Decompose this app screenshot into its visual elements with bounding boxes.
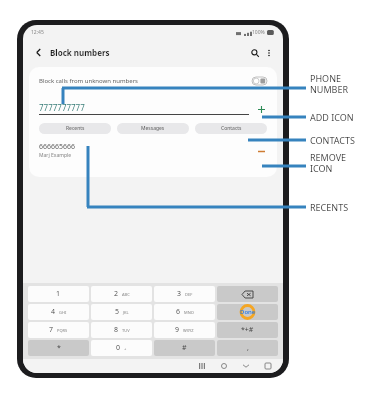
staticText: 7 <box>49 325 54 335</box>
staticText: GHI <box>59 310 67 315</box>
staticText: MNO <box>184 310 194 315</box>
staticText: # <box>182 343 187 353</box>
button[interactable]: Done <box>217 304 278 320</box>
button[interactable]: 0 <box>91 340 152 356</box>
button[interactable]: Remove number <box>255 145 267 157</box>
button[interactable]: 5 <box>91 304 152 320</box>
staticText: 4 <box>51 307 56 317</box>
staticText: 666665666 <box>39 142 76 152</box>
staticText: DEF <box>185 292 193 297</box>
staticText: Block calls from unknown numbers <box>39 77 138 85</box>
button[interactable]: 7 <box>28 322 89 338</box>
button[interactable]: Block calls from unknown numbers <box>29 74 277 88</box>
staticText: 0 <box>116 343 121 353</box>
staticText: + <box>124 346 127 351</box>
staticText: PQRS <box>57 328 68 333</box>
staticText: CONTACTS <box>310 134 355 146</box>
staticText: 6 <box>176 307 181 317</box>
staticText: REMOVE ICON <box>310 151 347 174</box>
button[interactable]: 4 <box>28 304 89 320</box>
button[interactable]: Add number <box>255 103 267 115</box>
button[interactable]: More options <box>262 46 275 59</box>
staticText: 100% <box>252 29 265 36</box>
staticText: Contacts <box>221 125 242 132</box>
staticText: RECENTS <box>310 201 349 213</box>
button[interactable]: *+# <box>217 322 278 338</box>
staticText: ADD ICON <box>310 111 354 123</box>
button[interactable]: 8 <box>91 322 152 338</box>
button[interactable]: 6 <box>154 304 215 320</box>
staticText: 9 <box>175 325 180 335</box>
button[interactable]: # <box>154 340 215 356</box>
staticText: 1 <box>56 289 61 299</box>
staticText: 8 <box>114 325 119 335</box>
staticText: 3 <box>177 289 182 299</box>
staticText: JKL <box>123 310 129 315</box>
button[interactable]: Home <box>218 360 230 372</box>
button[interactable]: Delete <box>217 286 278 302</box>
staticText: Marj Example <box>39 152 72 159</box>
button[interactable]: 2 <box>91 286 152 302</box>
staticText: 7777777777 <box>39 102 85 113</box>
staticText: 12:45 <box>31 29 44 36</box>
staticText: Messages <box>141 125 165 132</box>
staticText: Block numbers <box>50 47 110 58</box>
button[interactable]: 3 <box>154 286 215 302</box>
staticText: Recents <box>66 125 85 132</box>
button[interactable]: 1 <box>28 286 89 302</box>
button[interactable]: Contacts <box>195 123 267 134</box>
button[interactable]: Recents <box>196 360 208 372</box>
button[interactable]: Back <box>240 360 252 372</box>
staticText: ABC <box>122 292 130 297</box>
button[interactable]: Keyboard <box>262 360 274 372</box>
staticText: 5 <box>115 307 120 317</box>
button[interactable]: 666665666 <box>29 142 277 159</box>
staticText: , <box>247 343 249 353</box>
staticText: Done <box>240 308 256 316</box>
button[interactable]: * <box>28 340 89 356</box>
staticText: WXYZ <box>183 328 194 333</box>
staticText: TUV <box>122 328 130 333</box>
button[interactable]: Recents <box>39 123 111 134</box>
staticText: *+# <box>241 325 254 335</box>
staticText: PHONE NUMBER <box>310 72 349 95</box>
button[interactable]: Messages <box>117 123 189 134</box>
staticText: 2 <box>114 289 119 299</box>
button[interactable]: Search <box>247 45 262 60</box>
button[interactable]: 9 <box>154 322 215 338</box>
staticText: * <box>57 343 61 353</box>
button[interactable]: Back <box>31 45 46 60</box>
